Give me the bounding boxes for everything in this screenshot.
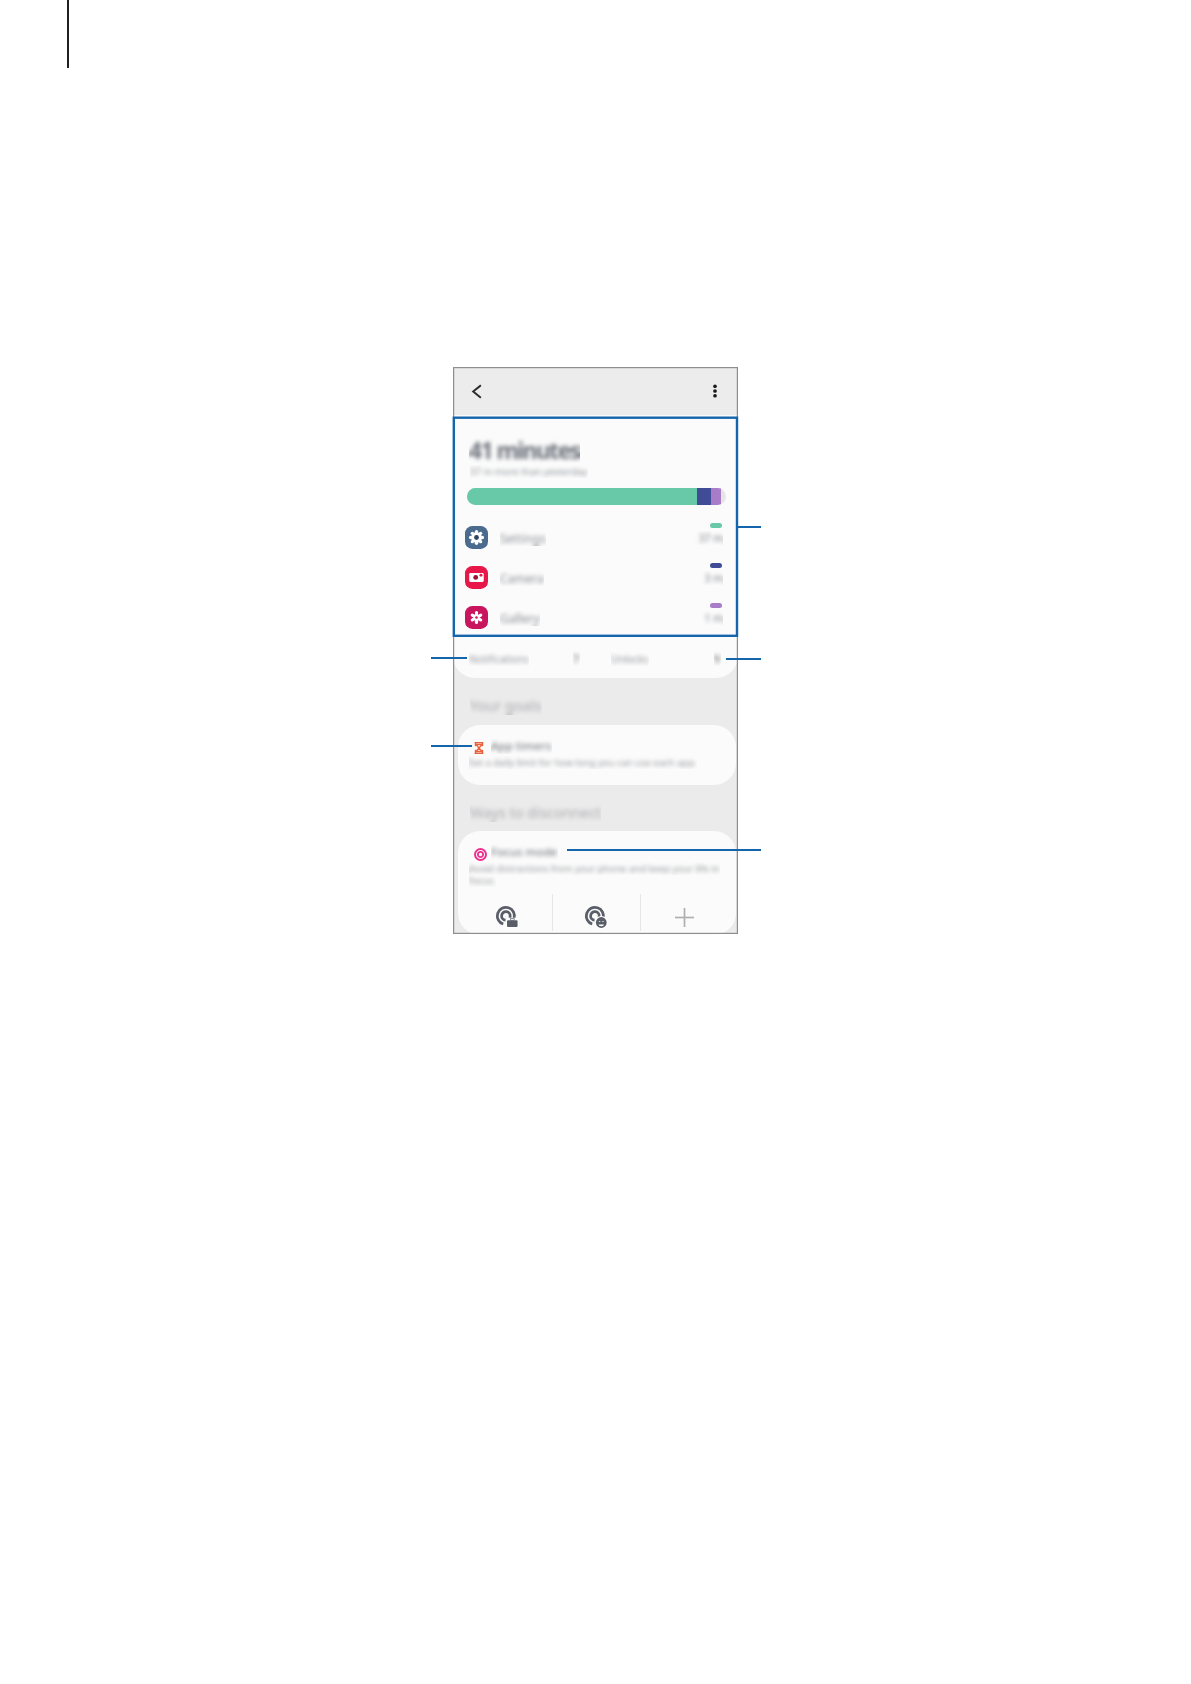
button[interactable]: Settings <box>453 526 738 566</box>
staticText: Ways to disconnect <box>470 802 601 822</box>
staticText: Settings <box>500 530 546 546</box>
staticText: 37 m <box>679 531 723 545</box>
staticText: Notifications <box>469 652 529 666</box>
staticText: Unlocks <box>611 652 649 666</box>
button[interactable]: Work apps <box>453 894 551 934</box>
button[interactable]: Gallery <box>453 606 738 646</box>
staticText: 41 minutes <box>469 434 580 465</box>
staticText: Set a daily limit for how long you can u… <box>469 756 697 769</box>
staticText: 9 <box>714 651 721 666</box>
staticText: 3 m <box>679 571 723 585</box>
button[interactable]: Back <box>456 371 496 411</box>
staticText: Focus mode <box>491 844 558 860</box>
staticText: 37 m more than yesterday <box>470 465 588 478</box>
button[interactable]: App timers <box>458 725 736 785</box>
button[interactable]: Focus mode <box>458 831 736 935</box>
button[interactable]: Camera <box>453 566 738 606</box>
button[interactable]: More options <box>695 371 735 411</box>
button[interactable]: Add <box>641 894 738 934</box>
staticText: Camera <box>500 570 544 586</box>
staticText: App timers <box>491 738 552 754</box>
staticText: focus. <box>469 874 496 887</box>
staticText: 1 m <box>679 611 723 625</box>
staticText: Avoid distractions from your phone and k… <box>469 862 720 875</box>
staticText: Your goals <box>470 695 542 715</box>
staticText: Gallery <box>500 610 540 626</box>
staticText: 7 <box>573 651 580 666</box>
button[interactable]: Personal apps <box>553 894 640 934</box>
